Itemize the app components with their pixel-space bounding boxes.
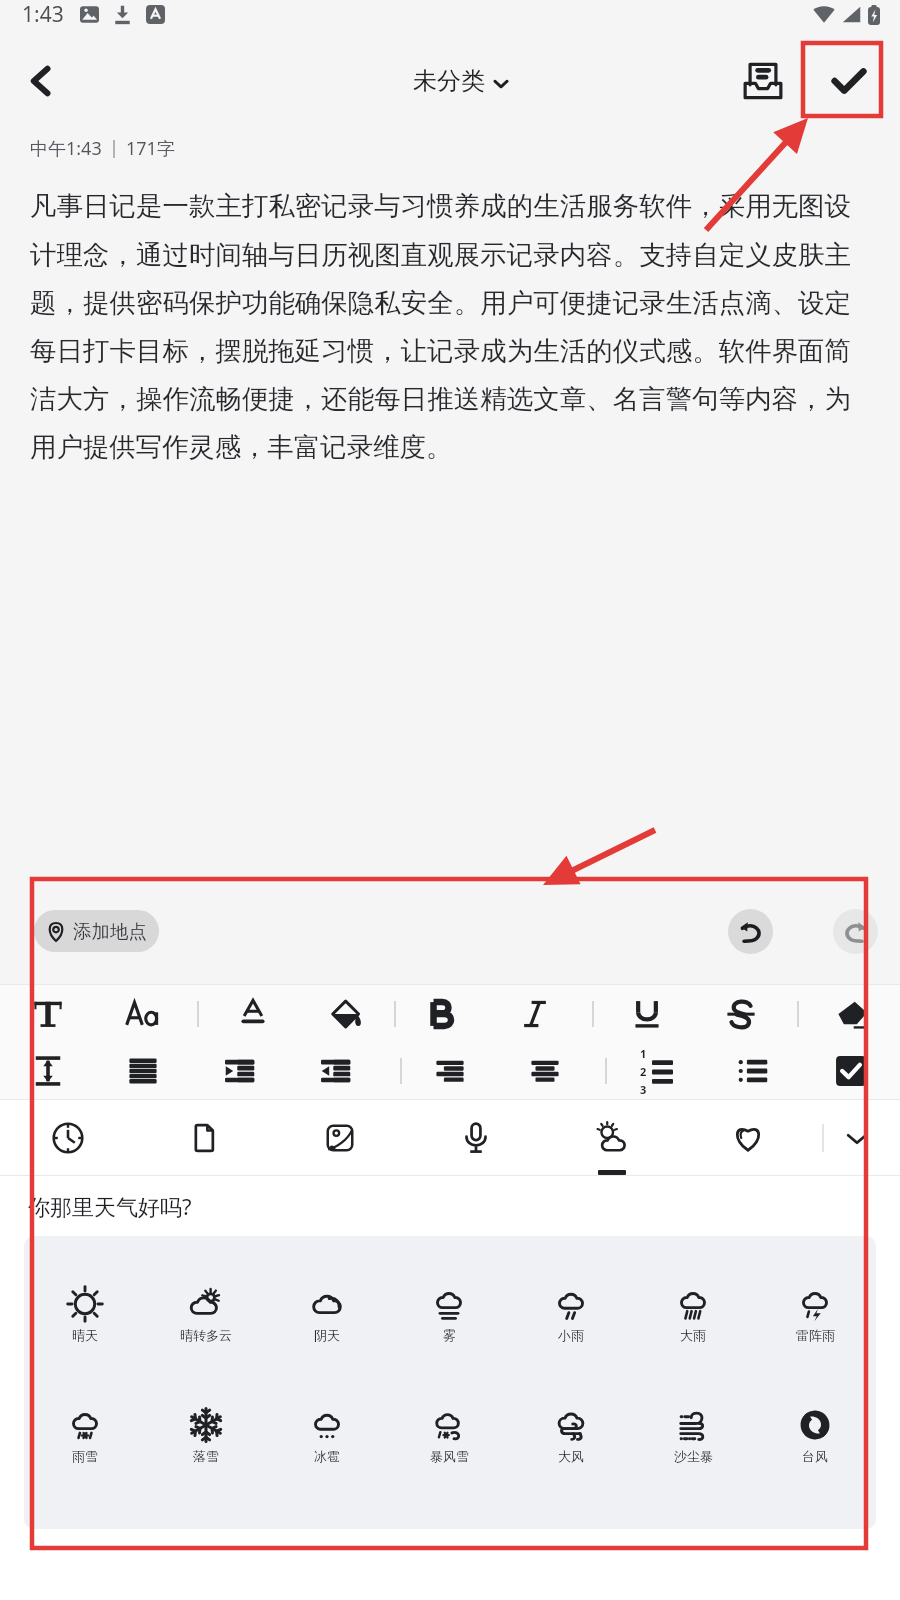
button[interactable]: Back xyxy=(12,52,70,110)
button[interactable]: Increase indent xyxy=(212,1043,268,1099)
staticText: 1:43 xyxy=(22,0,64,29)
button[interactable]: Insert weather xyxy=(578,1100,646,1175)
button[interactable]: Italic xyxy=(507,986,563,1042)
staticText: 雷阵雨 xyxy=(796,1327,835,1343)
button[interactable]: Bulleted list xyxy=(725,1043,781,1099)
button[interactable]: Bold xyxy=(413,986,469,1042)
staticText: 冰雹 xyxy=(314,1448,340,1464)
button[interactable]: 大雨 xyxy=(632,1286,754,1343)
button[interactable]: Insert time xyxy=(34,1100,102,1175)
staticText: 1 xyxy=(640,1046,647,1061)
staticText: 2 xyxy=(640,1064,647,1079)
button[interactable]: 晴转多云 xyxy=(145,1286,266,1343)
staticText: 未分类 xyxy=(413,66,485,96)
staticText: 中午1:43 xyxy=(30,136,102,161)
staticText: 大风 xyxy=(558,1448,584,1464)
button[interactable]: Done xyxy=(820,52,878,110)
button[interactable]: Align centre xyxy=(517,1043,573,1099)
staticText: 雾 xyxy=(443,1327,456,1343)
staticText: 暴风雪 xyxy=(430,1448,469,1464)
button[interactable]: Show more xyxy=(823,1100,891,1175)
button[interactable]: Insert file xyxy=(170,1100,238,1175)
staticText: 大雨 xyxy=(680,1327,706,1343)
button[interactable]: 暴风雪 xyxy=(388,1407,510,1464)
staticText: 沙尘暴 xyxy=(674,1448,713,1464)
button[interactable]: 冰雹 xyxy=(266,1407,388,1464)
button[interactable]: Underline xyxy=(619,986,675,1042)
button[interactable]: Voice input xyxy=(442,1100,510,1175)
staticText: 添加地点 xyxy=(73,920,147,943)
button[interactable]: 大风 xyxy=(510,1407,632,1464)
button[interactable]: Numbered list xyxy=(629,1043,685,1099)
button[interactable]: Justify xyxy=(115,1043,171,1099)
staticText: 171字 xyxy=(126,136,175,161)
button[interactable]: Insert mood xyxy=(714,1100,782,1175)
staticText: 你那里天气好吗? xyxy=(28,1191,192,1221)
button[interactable]: 沙尘暴 xyxy=(632,1407,754,1464)
button[interactable]: 未分类 xyxy=(403,60,518,102)
button[interactable]: Archive note xyxy=(734,52,792,110)
staticText: 台风 xyxy=(802,1448,828,1464)
button[interactable]: 雨雪 xyxy=(24,1407,145,1464)
button[interactable]: Strikethrough xyxy=(713,986,769,1042)
button[interactable]: 雷阵雨 xyxy=(754,1286,876,1343)
staticText: 小雨 xyxy=(558,1327,584,1343)
staticText: 晴转多云 xyxy=(180,1327,232,1343)
staticText: 3 xyxy=(640,1082,647,1097)
button[interactable]: Heading xyxy=(20,986,76,1042)
button[interactable]: Decrease indent xyxy=(308,1043,364,1099)
staticText: 阴天 xyxy=(314,1327,340,1343)
button[interactable]: 晴天 xyxy=(24,1286,145,1343)
button[interactable]: 阴天 xyxy=(266,1286,388,1343)
button[interactable]: Clear formatting xyxy=(824,986,880,1042)
button[interactable]: 添加地点 xyxy=(34,910,159,952)
button[interactable]: Redo xyxy=(833,909,878,954)
button[interactable]: 小雨 xyxy=(510,1286,632,1343)
button[interactable]: 雾 xyxy=(388,1286,510,1343)
button[interactable]: Text colour xyxy=(225,986,281,1042)
button[interactable]: Align right xyxy=(422,1043,478,1099)
button[interactable]: Font size xyxy=(115,986,171,1042)
button[interactable]: Line spacing xyxy=(20,1043,76,1099)
button[interactable]: Highlight xyxy=(319,986,375,1042)
staticText: 落雪 xyxy=(193,1448,219,1464)
button[interactable]: Undo xyxy=(728,909,773,954)
staticText: 凡事日记是一款主打私密记录与习惯养成的生活服务软件，采用无图设计理念，通过时间轴… xyxy=(30,190,851,464)
button[interactable]: 落雪 xyxy=(145,1407,266,1464)
button[interactable]: 台风 xyxy=(754,1407,876,1464)
button[interactable]: Checklist xyxy=(823,1043,879,1099)
staticText: 雨雪 xyxy=(72,1448,98,1464)
button[interactable]: Insert image xyxy=(306,1100,374,1175)
staticText: 晴天 xyxy=(72,1327,98,1343)
